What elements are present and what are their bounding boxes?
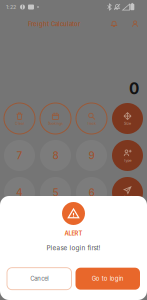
button[interactable]: Cancel (7, 268, 71, 290)
button[interactable]: Send (109, 174, 145, 211)
staticText: 1:22 (6, 4, 16, 10)
button[interactable]: 2 (37, 211, 73, 248)
button[interactable]: 6 (73, 174, 109, 211)
button[interactable]: Type (109, 137, 145, 174)
button[interactable]: 3 (73, 211, 109, 248)
button[interactable]: Go to login (75, 268, 140, 290)
staticText: Type (123, 158, 131, 163)
staticText: Track (87, 121, 96, 126)
staticText: 9 (88, 149, 94, 162)
button[interactable]: 5 (37, 174, 73, 211)
staticText: Clear (15, 121, 24, 126)
button[interactable]: Size (109, 100, 145, 137)
staticText: 0 (129, 79, 139, 98)
button[interactable]: Clear (1, 100, 37, 137)
button[interactable]: 4 (1, 174, 37, 211)
staticText: 6 (88, 186, 94, 199)
staticText: Please login first! (46, 244, 100, 252)
staticText: Bookings (48, 121, 63, 126)
button[interactable]: 7 (1, 137, 37, 174)
staticText: 4 (16, 186, 23, 199)
button[interactable]: 9 (73, 137, 109, 174)
staticText: Cancel (30, 275, 48, 282)
button[interactable]: Profile (126, 14, 144, 34)
staticText: Freight Calculator (28, 20, 80, 28)
staticText: Send (123, 195, 131, 200)
button[interactable]: Track (73, 100, 109, 137)
staticText: 5 (52, 186, 58, 199)
staticText: Go to login (92, 275, 124, 282)
button[interactable]: Notifications (105, 14, 123, 34)
staticText: Size (124, 121, 131, 126)
staticText: 8 (52, 149, 58, 162)
button[interactable]: Bookings (37, 100, 73, 137)
button[interactable]: 8 (37, 137, 73, 174)
staticText: 7 (16, 149, 22, 162)
staticText: ALERT (64, 230, 82, 237)
